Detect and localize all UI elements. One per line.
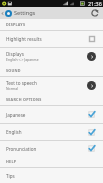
button[interactable]: Reset [89, 7, 101, 19]
staticText: HELP [6, 159, 17, 164]
staticText: Tips [6, 173, 15, 179]
button[interactable]: Highlight results [0, 31, 103, 47]
staticText: Highlight results [6, 36, 42, 42]
button[interactable]: Tips [0, 168, 103, 183]
staticText: Japanese [6, 112, 26, 118]
staticText: 21:36 [88, 0, 102, 7]
staticText: SOUND [6, 68, 21, 73]
staticText: DISPLAYS [6, 22, 26, 27]
button[interactable]: More [87, 81, 96, 90]
staticText: Text to speech [6, 80, 37, 86]
staticText: Normal [6, 86, 18, 91]
button[interactable]: English [0, 124, 103, 140]
staticText: SEARCH OPTIONS [6, 97, 42, 102]
button[interactable]: Displays [0, 48, 103, 65]
staticText: Settings [14, 9, 36, 17]
staticText: Displays [6, 51, 24, 57]
staticText: English <-> Japanese [6, 57, 39, 62]
button[interactable]: Japanese [0, 106, 103, 123]
button[interactable]: Pronunciation [0, 141, 103, 156]
button[interactable]: More [87, 52, 96, 61]
staticText: Pronunciation [6, 146, 37, 152]
staticText: English [6, 129, 22, 135]
button[interactable]: Text to speech [0, 77, 103, 94]
